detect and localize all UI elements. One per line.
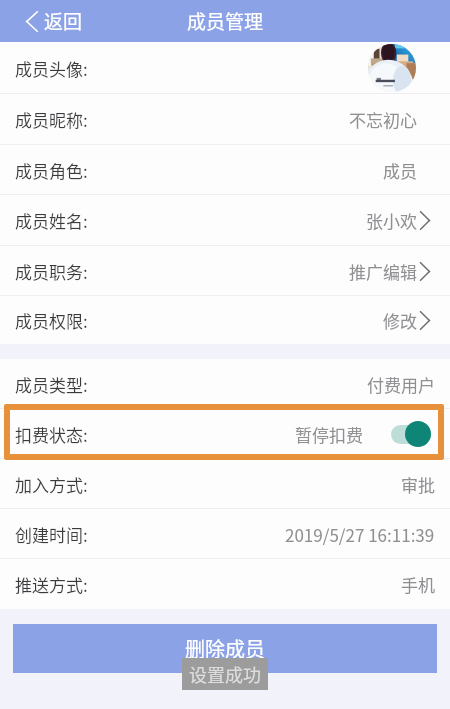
button[interactable]: 加入方式: [0,459,450,509]
staticText: 审批 [401,472,435,497]
button[interactable]: 成员角色: [0,145,450,195]
staticText: 返回 [44,7,83,35]
staticText: 推送方式: [15,572,88,597]
button[interactable]: 扣费状态: [0,409,450,459]
staticText: 成员管理 [187,7,264,35]
button[interactable]: 成员姓名: [0,195,450,246]
staticText: 推广编辑 [349,259,417,284]
staticText: 成员 [383,158,417,183]
button[interactable]: 成员头像: [0,42,450,94]
staticText: 删除成员 [185,634,265,663]
staticText: 成员角色: [15,158,88,183]
button[interactable]: 创建时间: [0,509,450,559]
staticText: 付费用户 [367,372,435,397]
staticText: 扣费状态: [15,422,88,447]
staticText: 成员职务: [15,259,88,284]
staticText: 加入方式: [15,472,88,497]
button[interactable]: 成员昵称: [0,94,450,145]
button[interactable]: 成员类型: [0,359,450,409]
staticText: 修改 [383,308,417,333]
button[interactable]: Member avatar [368,44,416,92]
button[interactable]: 成员职务: [0,246,450,296]
button[interactable]: 删除成员 [13,624,437,673]
button[interactable]: 推送方式: [0,559,450,609]
button[interactable]: 返回 [0,0,97,42]
staticText: 创建时间: [15,522,88,547]
staticText: 设置成功 [189,661,261,687]
staticText: 成员昵称: [15,107,88,132]
staticText: 成员权限: [15,308,88,333]
button[interactable]: Billing toggle [391,421,431,447]
staticText: 暂停扣费 [295,422,363,447]
button[interactable]: 成员权限: [0,296,450,344]
staticText: 手机 [401,572,435,597]
staticText: 张小欢 [366,208,417,233]
staticText: 2019/5/27 16:11:39 [285,522,435,547]
staticText: 成员姓名: [15,208,88,233]
staticText: 成员类型: [15,372,88,397]
staticText: 成员头像: [15,56,88,81]
staticText: 不忘初心 [349,107,417,132]
